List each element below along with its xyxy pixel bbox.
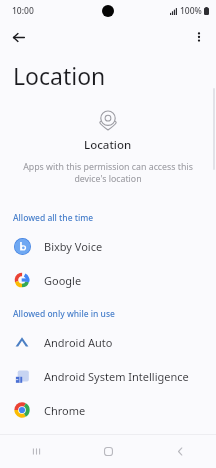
staticText: Google	[44, 273, 82, 288]
button[interactable]: Android Auto	[0, 325, 216, 359]
staticText: Apps with this permission can access thi…	[23, 161, 193, 185]
button[interactable]: Chrome	[0, 393, 216, 427]
button[interactable]: Back	[144, 435, 216, 468]
button[interactable]: Google	[0, 263, 216, 297]
staticText: Bixby Voice	[44, 239, 103, 254]
button[interactable]: Android System Intelligence	[0, 359, 216, 393]
staticText: Location	[84, 137, 132, 153]
button[interactable]: Back	[4, 23, 32, 51]
button[interactable]: Recents	[0, 435, 72, 468]
staticText: Location	[13, 60, 106, 91]
staticText: Chrome	[44, 403, 86, 418]
staticText: Allowed all the time	[13, 212, 94, 224]
button[interactable]: Bixby Voice	[0, 229, 216, 263]
staticText: Android System Intelligence	[44, 369, 189, 384]
staticText: Allowed only while in use	[13, 308, 115, 320]
staticText: 100%	[180, 5, 202, 17]
staticText: Android Auto	[44, 335, 113, 350]
button[interactable]: More options	[185, 23, 213, 51]
button[interactable]: Home	[72, 435, 144, 468]
staticText: 10:00	[12, 5, 34, 17]
